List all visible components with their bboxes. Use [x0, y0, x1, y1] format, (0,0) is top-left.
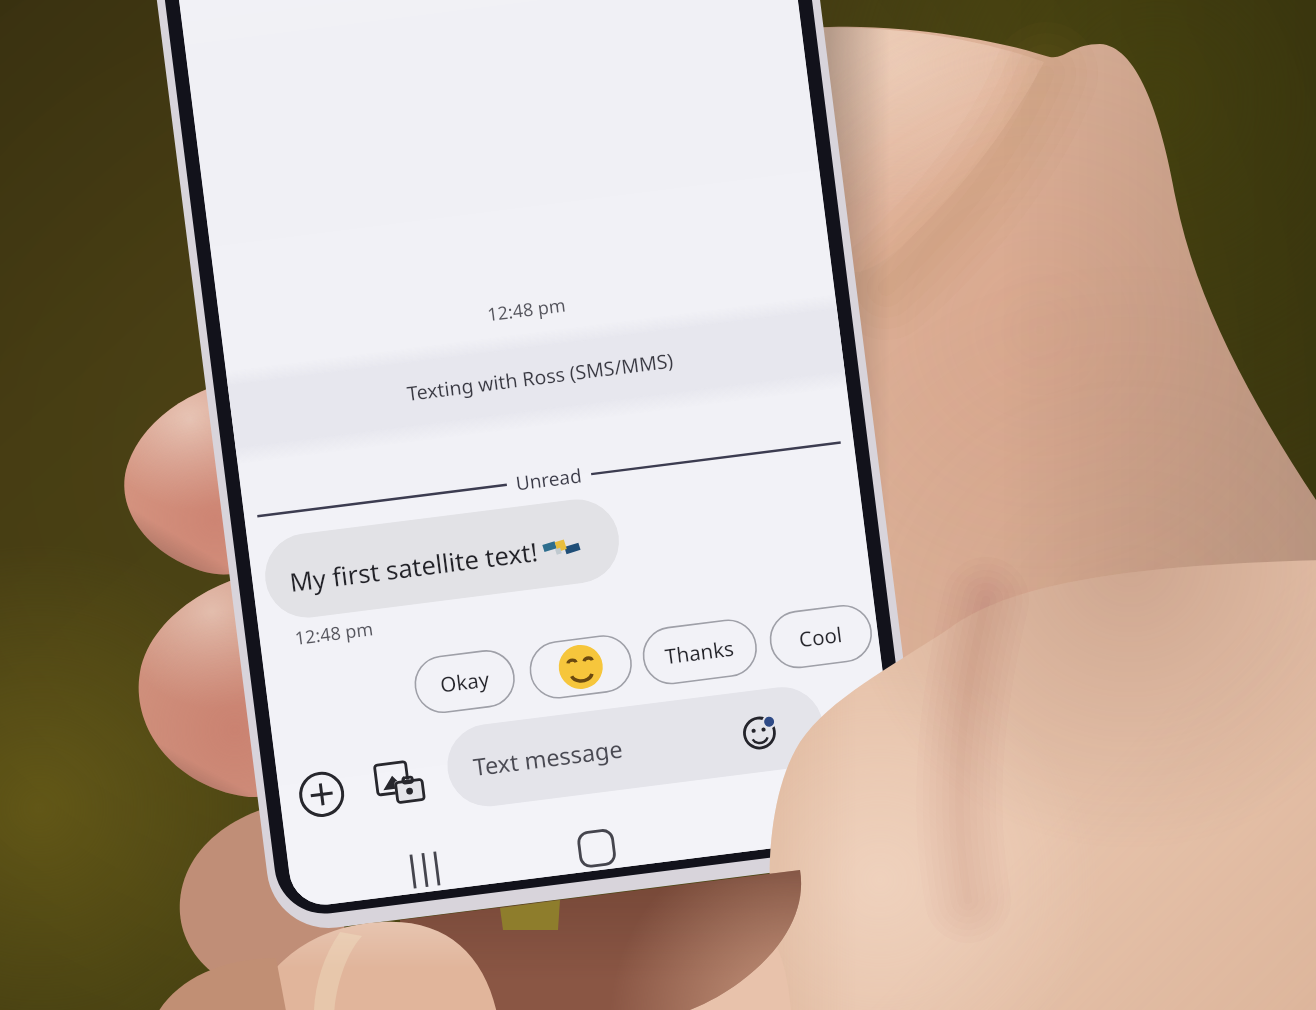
button[interactable]: Okay [415, 654, 514, 710]
button[interactable]: Smiling face reply [530, 639, 631, 695]
button[interactable]: Home [572, 824, 622, 872]
button[interactable]: Emoji keyboard [736, 712, 784, 760]
button[interactable]: Add attachment [298, 770, 348, 820]
button[interactable]: Gallery and camera [374, 758, 430, 808]
button[interactable]: Cool [770, 609, 871, 665]
button[interactable]: Recent apps [400, 848, 456, 894]
button[interactable]: Thanks [643, 624, 756, 680]
button[interactable]: My first satellite text! [250, 505, 630, 615]
button[interactable]: Text message input [430, 715, 800, 807]
